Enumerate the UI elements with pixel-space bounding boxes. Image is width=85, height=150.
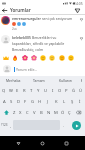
- button[interactable]: kelebek005: [1, 35, 84, 53]
- button[interactable]: emrenurnurguler: [1, 16, 84, 31]
- button[interactable]: Flower emoji: [22, 55, 28, 61]
- button[interactable]: Back: [13, 138, 24, 149]
- button[interactable]: Flower emoji: [31, 55, 37, 61]
- button[interactable]: Tamam: [26, 76, 52, 85]
- button[interactable]: C: [24, 107, 31, 118]
- staticText: Z: [13, 110, 16, 116]
- staticText: Ş: [71, 99, 74, 105]
- button[interactable]: K: [52, 96, 60, 107]
- button[interactable]: Emoji: [40, 55, 46, 61]
- staticText: J: [47, 99, 49, 105]
- staticText: K: [55, 99, 58, 105]
- button[interactable]: Ç: [66, 107, 73, 118]
- button[interactable]: V: [31, 107, 38, 118]
- staticText: P: [65, 88, 68, 94]
- button[interactable]: N: [45, 107, 52, 118]
- button[interactable]: Fire emoji: [12, 55, 18, 61]
- button[interactable]: Recents: [61, 138, 72, 149]
- staticText: U: [44, 88, 48, 94]
- staticText: I: [52, 88, 54, 94]
- button[interactable]: Ö: [59, 107, 66, 118]
- staticText: N: [47, 110, 51, 116]
- staticText: ?123: [1, 123, 8, 127]
- button[interactable]: G: [29, 96, 36, 107]
- button[interactable]: Merhaba: [0, 76, 26, 85]
- button[interactable]: Ü: [77, 85, 84, 96]
- button[interactable]: Y: [35, 85, 42, 96]
- button[interactable]: Ş: [68, 96, 76, 107]
- staticText: Ğ: [72, 88, 76, 94]
- button[interactable]: Kullanın: [52, 76, 78, 85]
- staticText: Benzalliusköç, colm: [12, 47, 44, 52]
- button[interactable]: R: [21, 85, 28, 96]
- staticText: .: [63, 123, 65, 128]
- button[interactable]: U: [42, 85, 49, 96]
- button[interactable]: Emoji: [68, 55, 74, 61]
- button[interactable]: ?123: [0, 118, 9, 132]
- button[interactable]: Like: [78, 35, 84, 41]
- staticText: Benzerlikleri vu: [32, 35, 57, 40]
- button[interactable]: W: [7, 85, 14, 96]
- button[interactable]: Like: [78, 16, 84, 22]
- button[interactable]: Q: [1, 85, 7, 96]
- staticText: L: [63, 99, 66, 105]
- staticText: 2sa: [12, 27, 17, 31]
- staticText: Ö: [61, 110, 65, 116]
- button[interactable]: X: [17, 107, 24, 118]
- button[interactable]: Shift: [1, 107, 11, 118]
- button[interactable]: T: [28, 85, 35, 96]
- staticText: seni çok seviyorum: [42, 16, 73, 21]
- button[interactable]: İ: [76, 96, 84, 107]
- button[interactable]: Z: [11, 107, 17, 118]
- staticText: G: [31, 99, 35, 105]
- staticText: W: [9, 88, 13, 94]
- staticText: S: [10, 99, 13, 105]
- button[interactable]: H: [36, 96, 44, 107]
- staticText: C: [26, 110, 29, 116]
- staticText: ,: [10, 123, 12, 128]
- staticText: B: [40, 110, 43, 116]
- button[interactable]: Share: [73, 6, 81, 14]
- staticText: T: [30, 88, 33, 94]
- button[interactable]: L: [60, 96, 68, 107]
- button[interactable]: More options: [78, 76, 85, 85]
- button[interactable]: F: [22, 96, 29, 107]
- staticText: R: [23, 88, 26, 94]
- button[interactable]: J: [44, 96, 52, 107]
- button[interactable]: O: [56, 85, 63, 96]
- button[interactable]: Backspace: [73, 107, 84, 118]
- button[interactable]: S: [8, 96, 15, 107]
- button[interactable]: Send: [72, 121, 81, 130]
- staticText: O: [58, 88, 62, 94]
- button[interactable]: Crown emoji: [3, 55, 9, 61]
- button[interactable]: Home: [37, 138, 48, 149]
- staticText: Kullanın: [59, 78, 72, 83]
- staticText: V: [33, 110, 36, 116]
- button[interactable]: E: [14, 85, 21, 96]
- button[interactable]: B: [38, 107, 45, 118]
- button[interactable]: I: [49, 85, 56, 96]
- button[interactable]: P: [63, 85, 70, 96]
- button[interactable]: Comma: [9, 118, 13, 132]
- staticText: Yorum ekle…: [16, 67, 38, 72]
- button[interactable]: Emoji: [59, 55, 65, 61]
- staticText: Tamam: [33, 78, 45, 83]
- staticText: Ç: [68, 110, 71, 116]
- staticText: kapardıkları, sifirdik ve yapılabilir: [12, 41, 65, 46]
- button[interactable]: Back: [1, 7, 8, 14]
- button[interactable]: Ğ: [70, 85, 77, 96]
- staticText: Q: [2, 88, 6, 94]
- staticText: Merhaba: [6, 78, 21, 83]
- staticText: 14:05: [74, 1, 83, 6]
- button[interactable]: M: [52, 107, 59, 118]
- staticText: H: [38, 99, 42, 105]
- button[interactable]: Yorum ekle…: [14, 67, 82, 72]
- button[interactable]: D: [15, 96, 22, 107]
- staticText: M: [54, 110, 58, 116]
- button[interactable]: Emoji: [49, 55, 55, 61]
- button[interactable]: A: [1, 96, 8, 107]
- staticText: Yorumlar: [10, 7, 31, 13]
- staticText: F: [24, 99, 27, 105]
